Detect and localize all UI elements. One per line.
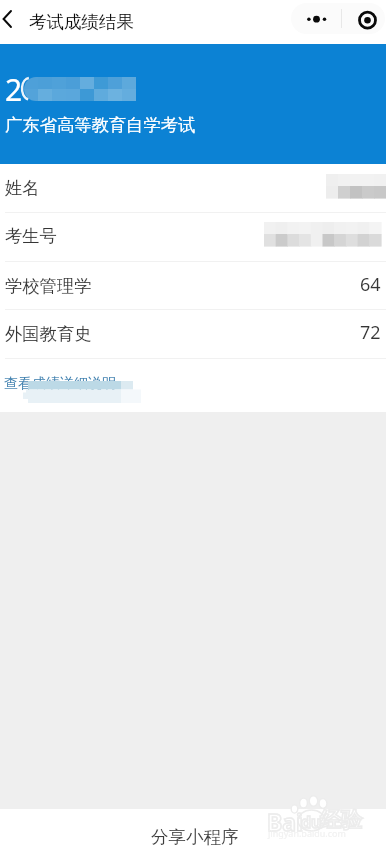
button[interactable]: 学校管理学 — [0, 261, 386, 310]
staticText: 分享小程序 — [151, 826, 239, 848]
button[interactable]: 查看成绩详细说明 — [0, 358, 386, 412]
staticText: 考生号 — [5, 225, 57, 247]
button[interactable]: Back — [0, 4, 26, 34]
staticText: 2 — [5, 69, 23, 110]
staticText: jingyan.baidu.com — [268, 827, 346, 839]
button[interactable]: 姓名 — [0, 164, 386, 212]
staticText: 64 — [360, 272, 381, 297]
button[interactable]: 分享小程序 — [0, 809, 386, 854]
staticText: Bai — [267, 806, 303, 837]
staticText: 72 — [360, 320, 381, 345]
button[interactable]: More options — [291, 3, 341, 34]
button[interactable]: 外国教育史 — [0, 309, 386, 358]
staticText: 查看成绩详细说明 — [4, 375, 116, 393]
staticText: 经验 — [320, 807, 362, 833]
button[interactable]: 考生号 — [0, 212, 386, 260]
staticText: 广东省高等教育自学考试 — [5, 114, 196, 136]
button[interactable]: Close mini program — [342, 3, 385, 34]
staticText: 外国教育史 — [5, 323, 92, 345]
staticText: 学校管理学 — [5, 275, 92, 297]
staticText: du — [301, 811, 322, 833]
staticText: 姓名 — [5, 177, 40, 199]
staticText: 考试成绩结果 — [29, 11, 134, 33]
